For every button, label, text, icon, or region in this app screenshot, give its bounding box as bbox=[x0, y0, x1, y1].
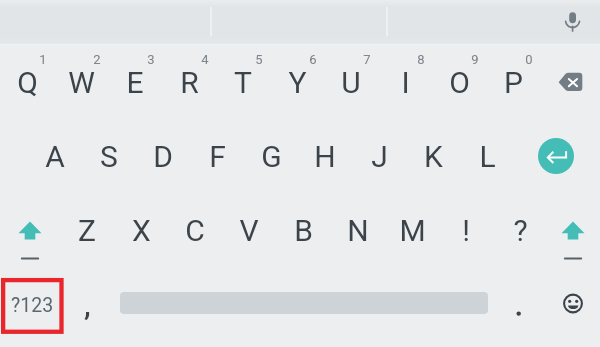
button[interactable]: Shift bbox=[8, 208, 52, 252]
staticText: 2 bbox=[93, 52, 101, 67]
staticText: 5 bbox=[255, 52, 263, 67]
staticText: 1 bbox=[39, 52, 47, 67]
staticText: T bbox=[234, 65, 252, 100]
staticText: B bbox=[294, 213, 313, 248]
button[interactable]: W bbox=[54, 55, 108, 109]
staticText: K bbox=[424, 139, 443, 174]
staticText: F bbox=[209, 139, 226, 174]
staticText: L bbox=[479, 139, 496, 174]
button[interactable]: Y bbox=[270, 55, 324, 109]
button[interactable]: N bbox=[331, 203, 385, 257]
staticText: ? bbox=[513, 213, 528, 248]
staticText: W bbox=[68, 65, 95, 100]
staticText: Y bbox=[288, 65, 307, 100]
button[interactable]: J bbox=[352, 129, 406, 183]
staticText: Z bbox=[78, 213, 96, 248]
staticText: 8 bbox=[417, 52, 425, 67]
button[interactable]: K bbox=[406, 129, 460, 183]
button[interactable]: V bbox=[222, 203, 276, 257]
button[interactable]: A bbox=[28, 129, 82, 183]
staticText: S bbox=[100, 139, 118, 174]
button[interactable]: D bbox=[136, 129, 190, 183]
button[interactable]: P bbox=[486, 55, 540, 109]
button[interactable]: ! bbox=[439, 203, 493, 257]
staticText: 3 bbox=[147, 52, 155, 67]
button[interactable]: Voice input bbox=[556, 6, 588, 38]
staticText: 0 bbox=[525, 52, 533, 67]
button[interactable]: Shift bbox=[551, 208, 595, 252]
button[interactable]: I bbox=[378, 55, 432, 109]
button[interactable]: ?123 bbox=[3, 280, 61, 330]
staticText: U bbox=[341, 65, 361, 100]
button[interactable]: H bbox=[298, 129, 352, 183]
staticText: P bbox=[504, 65, 523, 100]
button[interactable]: M bbox=[385, 203, 439, 257]
staticText: E bbox=[126, 65, 144, 100]
button[interactable]: Period bbox=[500, 290, 538, 330]
button[interactable]: Q bbox=[0, 55, 54, 109]
button[interactable]: Enter bbox=[538, 138, 574, 174]
button[interactable]: Emoji bbox=[556, 287, 589, 320]
button[interactable]: C bbox=[168, 203, 222, 257]
button[interactable]: O bbox=[432, 55, 486, 109]
staticText: I bbox=[401, 65, 410, 100]
button[interactable]: L bbox=[460, 129, 514, 183]
staticText: A bbox=[45, 139, 65, 174]
staticText: D bbox=[153, 139, 173, 174]
staticText: ! bbox=[462, 213, 470, 248]
staticText: X bbox=[132, 213, 151, 248]
button[interactable]: , bbox=[69, 280, 105, 328]
button[interactable]: U bbox=[324, 55, 378, 109]
staticText: ?123 bbox=[11, 294, 54, 317]
staticText: 4 bbox=[201, 52, 209, 67]
button[interactable]: G bbox=[244, 129, 298, 183]
staticText: N bbox=[347, 213, 369, 248]
staticText: G bbox=[261, 139, 282, 174]
button[interactable]: S bbox=[82, 129, 136, 183]
staticText: V bbox=[239, 213, 259, 248]
button[interactable]: F bbox=[190, 129, 244, 183]
button[interactable]: E bbox=[108, 55, 162, 109]
staticText: C bbox=[185, 213, 205, 248]
button[interactable]: X bbox=[114, 203, 168, 257]
button[interactable]: B bbox=[276, 203, 330, 257]
staticText: H bbox=[314, 139, 336, 174]
staticText: , bbox=[84, 287, 91, 322]
staticText: 7 bbox=[363, 52, 371, 67]
staticText: R bbox=[180, 65, 199, 100]
button[interactable]: R bbox=[162, 55, 216, 109]
button[interactable]: ? bbox=[493, 203, 547, 257]
button[interactable]: Z bbox=[60, 203, 114, 257]
staticText: M bbox=[399, 213, 426, 248]
staticText: J bbox=[371, 139, 388, 174]
staticText: Q bbox=[17, 65, 38, 100]
staticText: O bbox=[449, 65, 470, 100]
button[interactable]: Backspace bbox=[551, 65, 591, 99]
staticText: 9 bbox=[471, 52, 479, 67]
button[interactable]: T bbox=[216, 55, 270, 109]
staticText: 6 bbox=[309, 52, 317, 67]
